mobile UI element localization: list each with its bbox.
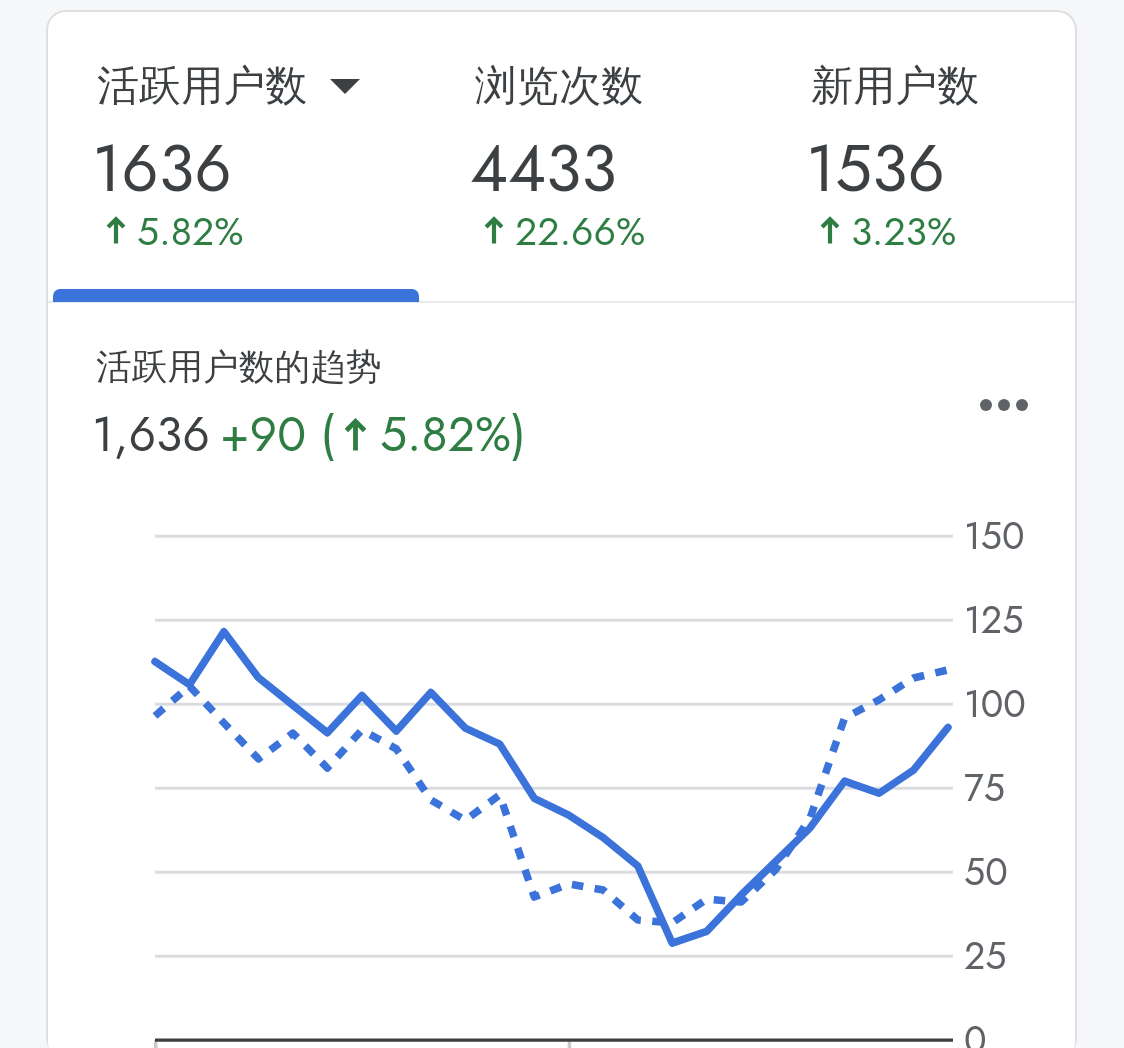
staticText: +90 ( (220, 400, 336, 469)
staticText: 浏览次数 (475, 60, 643, 113)
button[interactable]: 新用户数 (751, 12, 1075, 302)
staticText: 5.82% (137, 203, 244, 259)
staticText: 50 (964, 845, 1008, 899)
staticText: 100 (964, 677, 1026, 731)
staticText: 1636 (92, 121, 232, 215)
staticText: 5.82%) (380, 400, 526, 469)
staticText: 1,636 (92, 400, 210, 469)
staticText: 22.66% (515, 203, 646, 259)
staticText: 75 (964, 761, 1005, 815)
staticText: 0 (964, 1013, 987, 1048)
staticText: 4433 (470, 121, 617, 215)
staticText: 150 (964, 509, 1025, 563)
staticText: 125 (964, 593, 1024, 647)
staticText: 3.23% (851, 203, 957, 259)
button[interactable]: 活跃用户数 (48, 12, 418, 302)
staticText: 活跃用户数的趋势 (96, 345, 382, 390)
staticText: 新用户数 (811, 60, 979, 113)
staticText: 活跃用户数 (97, 60, 307, 113)
staticText: 1536 (806, 121, 945, 215)
button[interactable]: 浏览次数 (418, 12, 751, 302)
button[interactable]: More options (950, 369, 1022, 441)
staticText: 25 (964, 929, 1007, 983)
